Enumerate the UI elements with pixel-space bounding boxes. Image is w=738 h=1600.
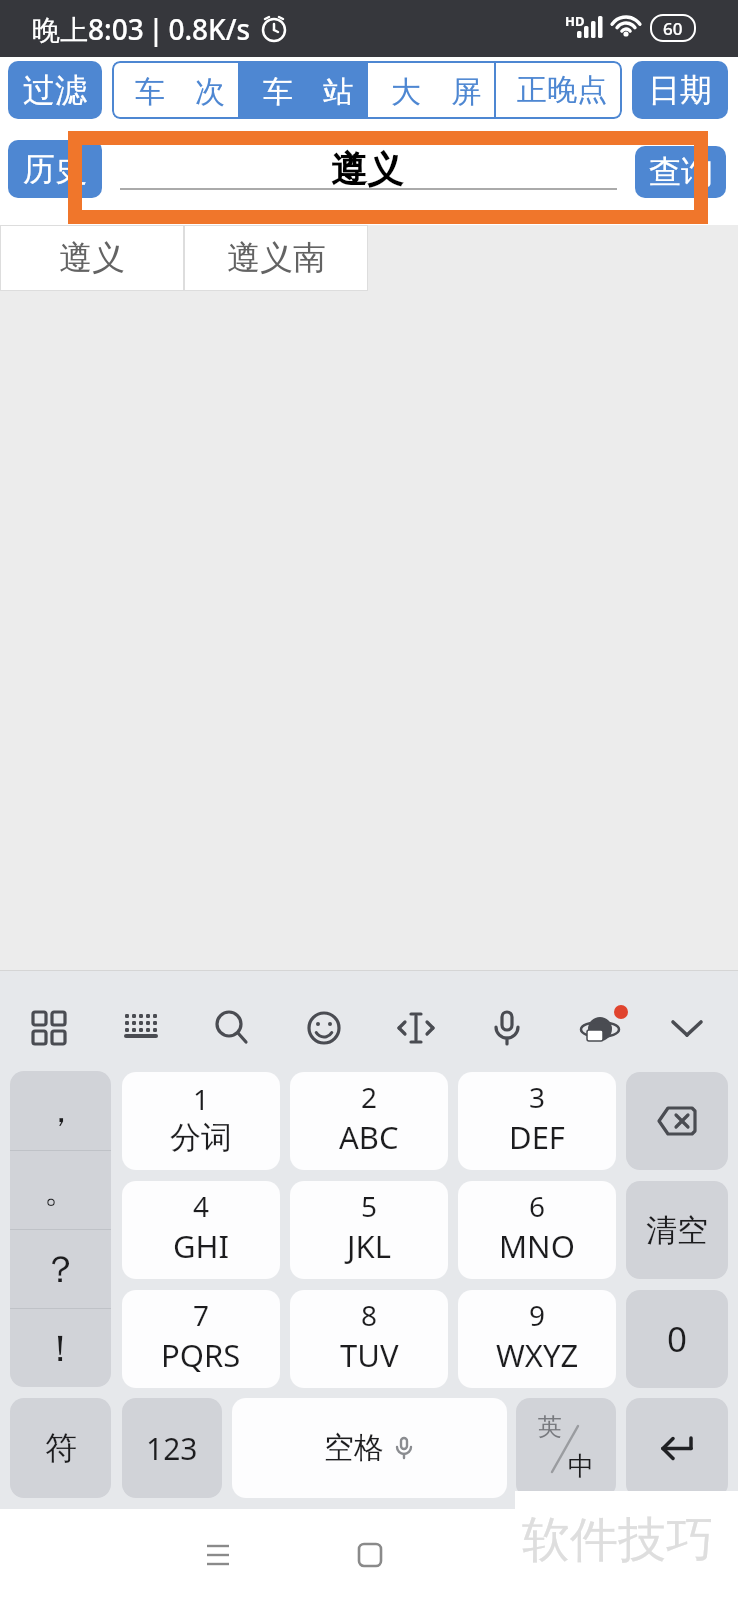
button[interactable]: 空格 — [232, 1398, 507, 1498]
staticText: 0 — [667, 1315, 688, 1363]
staticText: JKL — [347, 1225, 391, 1267]
staticText: 清空 — [646, 1211, 708, 1250]
staticText: 60 — [663, 17, 683, 40]
staticText: 9 — [529, 1296, 546, 1334]
button[interactable]: 查询 — [635, 146, 726, 198]
staticText: PQRS — [161, 1334, 241, 1376]
staticText: 4 — [193, 1187, 210, 1225]
button[interactable]: 2 — [290, 1072, 448, 1170]
staticText: 软件技巧 — [522, 1510, 714, 1570]
staticText: ？ — [42, 1246, 79, 1293]
staticText: 2 — [361, 1078, 378, 1116]
staticText: 5 — [361, 1187, 378, 1225]
staticText: 遵义南 — [227, 237, 326, 279]
button[interactable]: 英 — [516, 1398, 616, 1498]
button[interactable]: 符 — [10, 1398, 111, 1498]
staticText: 历史 — [23, 149, 87, 189]
staticText: 7 — [193, 1296, 210, 1334]
staticText: 正晚点 — [517, 71, 607, 109]
staticText: 符 — [45, 1428, 77, 1468]
button[interactable]: ？ — [10, 1230, 111, 1308]
staticText: GHI — [173, 1225, 230, 1267]
staticText: ！ — [42, 1325, 79, 1372]
button[interactable]: 正晚点 — [496, 61, 622, 119]
staticText: 1 — [193, 1080, 210, 1118]
staticText: 遵义 — [59, 237, 125, 279]
staticText: 车 次 — [135, 70, 225, 111]
button[interactable]: 8 — [290, 1290, 448, 1388]
staticText: 过滤 — [23, 70, 87, 110]
staticText: 6 — [529, 1187, 546, 1225]
staticText: 大 屏 — [391, 70, 481, 111]
button[interactable]: 历史 — [8, 140, 102, 198]
button[interactable]: 。 — [10, 1151, 111, 1229]
staticText: 晚上8:03 | 0.8K/s — [32, 10, 251, 48]
button[interactable]: 123 — [122, 1398, 222, 1498]
button[interactable]: 6 — [458, 1181, 616, 1279]
staticText: TUV — [340, 1334, 399, 1376]
button[interactable]: 车 次 — [112, 61, 238, 119]
staticText: HD — [565, 12, 585, 30]
staticText: 日期 — [648, 70, 712, 110]
button[interactable]: 9 — [458, 1290, 616, 1388]
staticText: 8 — [361, 1296, 378, 1334]
staticText: DEF — [509, 1116, 565, 1158]
button[interactable]: ！ — [10, 1309, 111, 1387]
button[interactable]: 1 — [122, 1072, 280, 1170]
staticText: 遵义 — [331, 147, 403, 192]
button[interactable]: 0 — [626, 1290, 728, 1388]
staticText: 3 — [529, 1078, 546, 1116]
button[interactable]: 遵义南 — [184, 225, 368, 291]
button[interactable]: 遵义 — [0, 225, 184, 291]
staticText: 空格 — [324, 1429, 384, 1467]
button[interactable]: 车 站 — [240, 61, 366, 119]
staticText: 。 — [44, 1169, 78, 1212]
button[interactable]: ， — [10, 1071, 111, 1150]
button[interactable]: 清空 — [626, 1181, 728, 1279]
button[interactable]: 日期 — [632, 61, 728, 119]
button[interactable]: 过滤 — [8, 61, 102, 119]
button[interactable]: 7 — [122, 1290, 280, 1388]
staticText: 中 — [568, 1450, 594, 1483]
button[interactable]: 4 — [122, 1181, 280, 1279]
staticText: WXYZ — [496, 1334, 579, 1376]
button[interactable] — [626, 1398, 728, 1498]
staticText: 车 站 — [263, 70, 353, 111]
staticText: 分词 — [170, 1118, 232, 1157]
staticText: MNO — [499, 1225, 575, 1267]
button[interactable] — [626, 1072, 728, 1170]
button[interactable]: 5 — [290, 1181, 448, 1279]
button[interactable]: 大 屏 — [368, 61, 494, 119]
staticText: ， — [44, 1089, 78, 1132]
staticText: 英 — [538, 1412, 562, 1442]
staticText: 123 — [146, 1428, 198, 1469]
button[interactable]: 3 — [458, 1072, 616, 1170]
staticText: 查询 — [649, 152, 713, 192]
staticText: ABC — [339, 1116, 399, 1158]
